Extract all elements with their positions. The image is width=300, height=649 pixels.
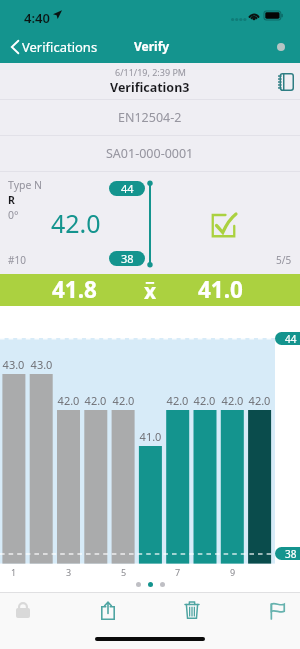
button[interactable]: Share bbox=[93, 597, 123, 623]
staticText: 43.0 bbox=[29, 357, 54, 372]
staticText: 0° bbox=[8, 208, 19, 222]
staticText: EN12504-2 bbox=[118, 109, 182, 126]
staticText: 42.0 bbox=[220, 393, 245, 408]
other: Status bbox=[277, 43, 285, 51]
staticText: SA01-000-0001 bbox=[106, 145, 194, 162]
staticText: 42.0 bbox=[165, 393, 190, 408]
staticText: 44 bbox=[285, 332, 297, 345]
staticText: Verification3 bbox=[110, 79, 190, 96]
staticText: Verifications bbox=[22, 38, 98, 56]
staticText: 42.0 bbox=[83, 393, 108, 408]
staticText: 38 bbox=[285, 547, 297, 560]
staticText: 43.0 bbox=[1, 357, 26, 372]
staticText: 42.0 bbox=[111, 393, 136, 408]
staticText: 6/11/19, 2:39 PM bbox=[115, 66, 186, 78]
staticText: 42.0 bbox=[192, 393, 217, 408]
button[interactable]: Flag bbox=[262, 597, 292, 623]
staticText: x bbox=[144, 277, 157, 306]
staticText: 3 bbox=[57, 566, 80, 578]
staticText: 41.8 bbox=[52, 274, 97, 305]
button[interactable]: Verifications bbox=[0, 38, 104, 56]
staticText: 5 bbox=[112, 566, 135, 578]
staticText: 44 bbox=[121, 181, 134, 196]
button[interactable]: Notes bbox=[278, 73, 294, 91]
button[interactable]: SA01-000-0001 bbox=[0, 136, 300, 171]
staticText: 5/5 bbox=[276, 253, 292, 267]
staticText: 42.0 bbox=[56, 393, 81, 408]
staticText: 42.0 bbox=[51, 206, 101, 240]
button[interactable]: EN12504-2 bbox=[0, 100, 300, 135]
staticText: 4:40 bbox=[24, 9, 50, 27]
staticText: 9 bbox=[221, 566, 244, 578]
button[interactable]: Delete bbox=[177, 597, 207, 623]
staticText: 42.0 bbox=[247, 393, 272, 408]
staticText: Type N bbox=[8, 178, 43, 192]
staticText: 1 bbox=[2, 566, 25, 578]
staticText: #10 bbox=[8, 253, 26, 267]
staticText: 38 bbox=[121, 251, 134, 266]
button[interactable]: Lock bbox=[8, 597, 38, 623]
staticText: R bbox=[8, 193, 15, 207]
staticText: 7 bbox=[166, 566, 189, 578]
staticText: 41.0 bbox=[138, 429, 163, 444]
button[interactable]: 6/11/19, 2:39 PM bbox=[0, 63, 300, 99]
staticText: Verify bbox=[134, 38, 170, 54]
staticText: 41.0 bbox=[198, 274, 243, 305]
